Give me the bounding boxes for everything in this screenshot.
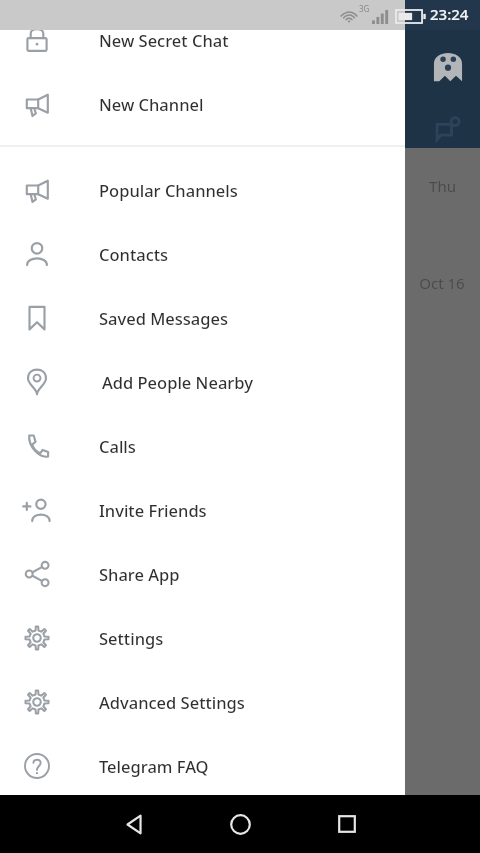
staticText: Calls: [99, 435, 136, 457]
staticText: Telegram FAQ: [99, 755, 209, 777]
button[interactable]: Share App: [0, 542, 405, 606]
staticText: Share App: [99, 563, 180, 585]
staticText: 3G: [359, 3, 370, 14]
button[interactable]: Telegram FAQ: [0, 734, 405, 798]
staticText: New Channel: [99, 93, 204, 115]
staticText: Add People Nearby: [102, 371, 253, 393]
button[interactable]: Invite Friends: [0, 478, 405, 542]
button[interactable]: Contacts: [0, 222, 405, 286]
button[interactable]: Popular Channels: [0, 158, 405, 222]
button[interactable]: Add People Nearby: [0, 350, 405, 414]
staticText: Advanced Settings: [99, 691, 245, 713]
staticText: Thu: [429, 176, 456, 196]
button[interactable]: New Secret Chat: [0, 8, 405, 72]
staticText: 23:24: [430, 4, 469, 24]
staticText: Oct 16: [419, 273, 465, 293]
button[interactable]: Recent apps: [316, 795, 378, 853]
staticText: Settings: [99, 627, 164, 649]
button[interactable]: Advanced Settings: [0, 670, 405, 734]
staticText: Contacts: [99, 243, 169, 265]
staticText: New Secret Chat: [99, 29, 229, 51]
button[interactable]: New Channel: [0, 72, 405, 136]
staticText: Invite Friends: [99, 499, 207, 521]
staticText: Popular Channels: [99, 179, 238, 201]
staticText: Saved Messages: [99, 307, 229, 329]
button[interactable]: Saved Messages: [0, 286, 405, 350]
button[interactable]: Back: [104, 795, 166, 853]
button[interactable]: Settings: [0, 606, 405, 670]
button[interactable]: Calls: [0, 414, 405, 478]
button[interactable]: Home: [209, 795, 271, 853]
